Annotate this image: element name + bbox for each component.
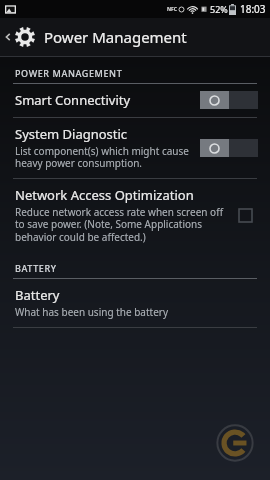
staticText: Battery — [15, 286, 60, 304]
staticText: What has been using the battery — [15, 305, 169, 319]
staticText: BATTERY — [15, 262, 57, 274]
button[interactable]: Toggle, off — [200, 139, 258, 157]
staticText: POWER MANAGEMENT — [15, 67, 123, 79]
staticText: 52% — [210, 3, 228, 15]
button[interactable]: System Diagnostic — [0, 118, 270, 178]
staticText: System Diagnostic — [15, 125, 128, 143]
button[interactable]: Back to settings — [0, 18, 270, 56]
staticText: Smart Connectivity — [15, 91, 131, 109]
button[interactable]: Smart Connectivity — [0, 84, 270, 117]
button[interactable]: Toggle, off — [200, 91, 258, 109]
button[interactable]: Battery — [0, 279, 270, 327]
staticText: Power Management — [44, 27, 187, 47]
staticText: 18:03 — [240, 2, 266, 16]
staticText: NFC — [167, 6, 178, 13]
staticText: Network Access Optimization — [15, 186, 194, 204]
button[interactable]: Network Access Optimization — [0, 179, 270, 252]
button[interactable]: Checkbox, unchecked — [232, 202, 258, 228]
staticText: List component(s) which might cause heav… — [15, 144, 192, 170]
staticText: Reduce network access rate when screen o… — [15, 205, 224, 244]
